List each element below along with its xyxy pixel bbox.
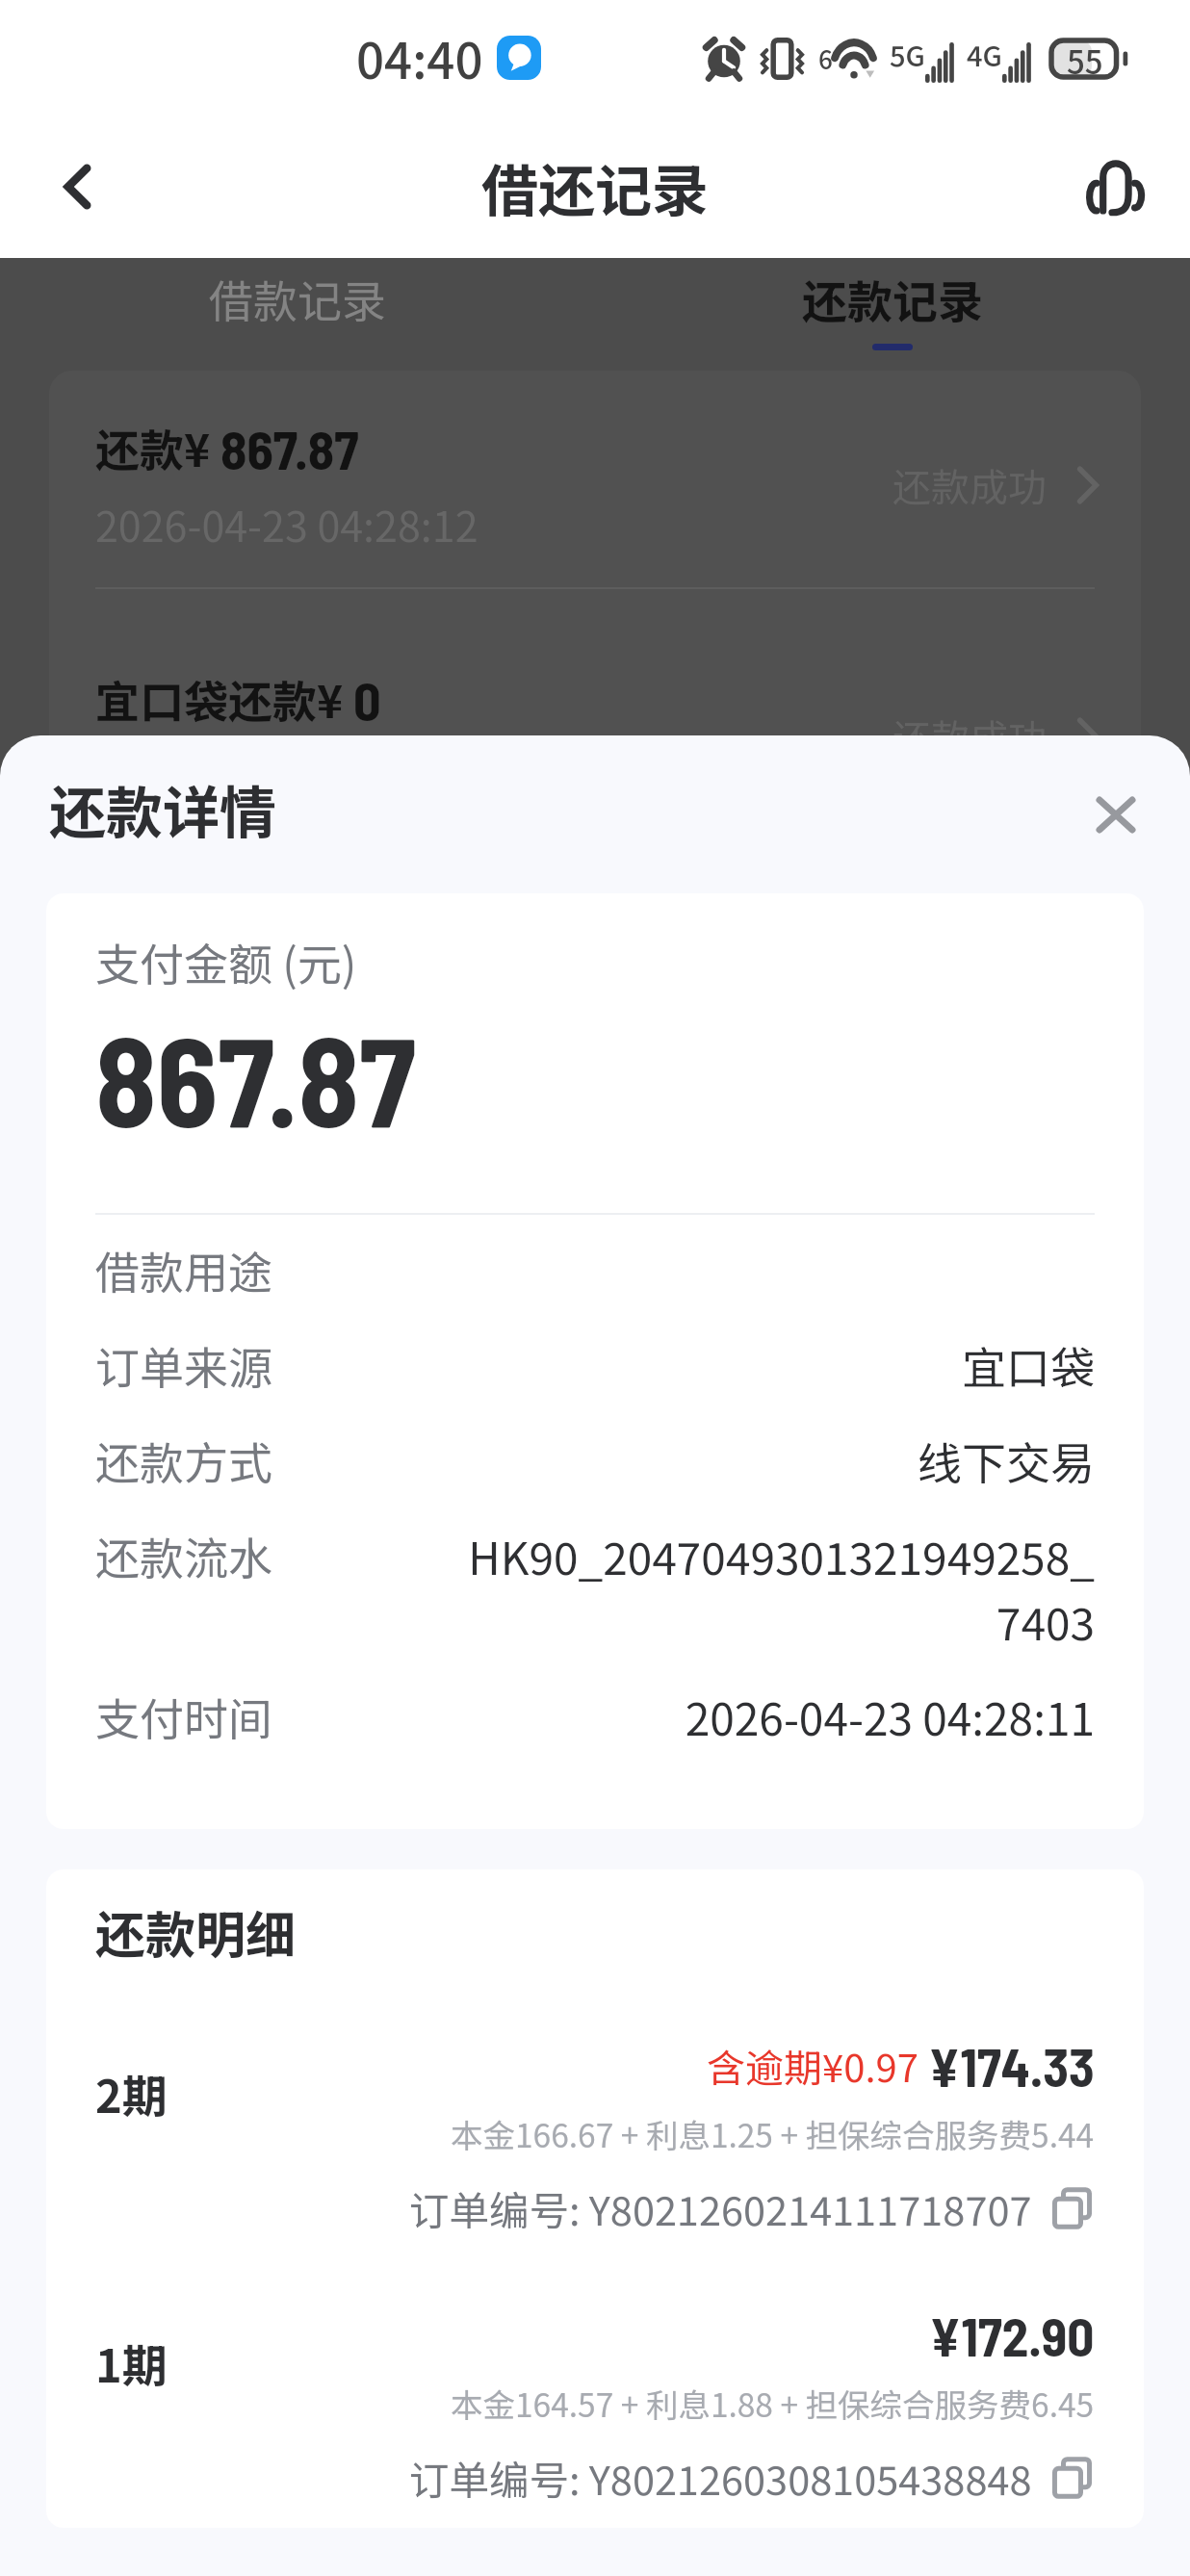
staticText: 4G <box>967 34 1002 74</box>
staticText: 本金164.57 + 利息1.88 + 担保综合服务费6.45 <box>451 2380 1095 2427</box>
button[interactable]: Customer service <box>1057 129 1173 245</box>
staticText: 867.87 <box>220 416 359 480</box>
button[interactable]: Close <box>1063 761 1169 867</box>
button[interactable]: Copy <box>1052 2457 1092 2499</box>
staticText: HK90_2047049301321949258_7403 <box>453 1524 1095 1654</box>
staticText: 55 <box>1067 38 1103 80</box>
staticText: 借款记录 <box>209 267 386 331</box>
staticText: 借还记录 <box>481 146 710 228</box>
staticText: 支付时间 <box>95 1685 453 1749</box>
staticText: 借款用途 <box>95 1238 453 1302</box>
button[interactable]: 还款¥ <box>49 371 1141 587</box>
staticText: 2026-04-23 04:28:12 <box>95 745 479 805</box>
button[interactable]: 还款记录 <box>595 258 1190 358</box>
staticText: 还款成功 <box>892 708 1047 764</box>
staticText: 还款成功 <box>892 457 1047 513</box>
button[interactable]: Copy <box>1052 2187 1092 2229</box>
staticText: 2期 <box>95 2060 346 2125</box>
staticText: ¥174.33 <box>928 2034 1095 2098</box>
staticText: 线下交易 <box>453 1429 1095 1493</box>
button[interactable]: 借款记录 <box>0 258 595 358</box>
staticText: 还款明细 <box>95 1895 297 1968</box>
staticText: 本金166.67 + 利息1.25 + 担保综合服务费5.44 <box>451 2110 1095 2157</box>
staticText: 含逾期¥0.97 <box>707 2038 918 2094</box>
staticText: 还款详情 <box>49 768 277 850</box>
staticText: 6 <box>818 40 833 77</box>
staticText: 还款流水 <box>95 1524 453 1588</box>
staticText: 867.87 <box>95 1002 416 1152</box>
staticText: 订单编号: Y8021260214111718707 <box>409 2179 1032 2237</box>
staticText: 1期 <box>95 2330 346 2395</box>
staticText: 支付金额 (元) <box>95 930 357 994</box>
button[interactable]: Back <box>19 129 135 245</box>
staticText: 还款方式 <box>95 1429 453 1493</box>
staticText: 还款¥ <box>95 416 220 480</box>
staticText: 0 <box>353 667 381 732</box>
staticText: 04:40 <box>356 22 483 93</box>
staticText: 宜口袋 <box>453 1333 1095 1398</box>
button[interactable]: 宜口袋还款¥ <box>49 589 1141 838</box>
staticText: 5G <box>890 34 925 74</box>
staticText: 2026-04-23 04:28:11 <box>453 1685 1095 1749</box>
staticText: ¥172.90 <box>929 2304 1095 2367</box>
staticText: 2026-04-23 04:28:12 <box>95 494 479 554</box>
staticText: 宜口袋还款¥ <box>95 667 353 732</box>
staticText: 还款记录 <box>802 266 983 331</box>
staticText: 订单来源 <box>95 1333 453 1398</box>
staticText: 订单编号: Y8021260308105438848 <box>409 2449 1032 2507</box>
